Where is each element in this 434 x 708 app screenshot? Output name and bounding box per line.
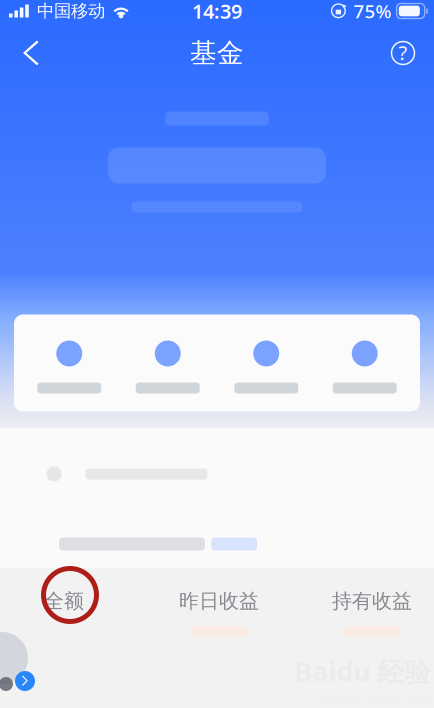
button[interactable]: 帮助	[380, 30, 426, 76]
button[interactable]: 活期理财	[20, 340, 118, 393]
button[interactable]: 定期理财	[118, 340, 217, 393]
button[interactable]: 持有收益	[310, 589, 434, 637]
staticText: 14:39	[192, 0, 242, 24]
button[interactable]: 昨日收益	[128, 589, 310, 637]
button[interactable]: 全额	[0, 589, 128, 637]
staticText: 中国移动	[37, 0, 105, 22]
staticText: 持有收益	[332, 589, 412, 613]
staticText: ?	[398, 39, 407, 66]
staticText: 昨日收益	[179, 589, 259, 613]
staticText: 全额	[44, 589, 84, 613]
staticText: 75%	[354, 0, 392, 23]
button[interactable]: 基金排行	[217, 340, 315, 393]
button[interactable]: 返回	[8, 30, 54, 76]
staticText: 基金	[190, 37, 244, 69]
button[interactable]: 我的持仓	[315, 340, 414, 393]
